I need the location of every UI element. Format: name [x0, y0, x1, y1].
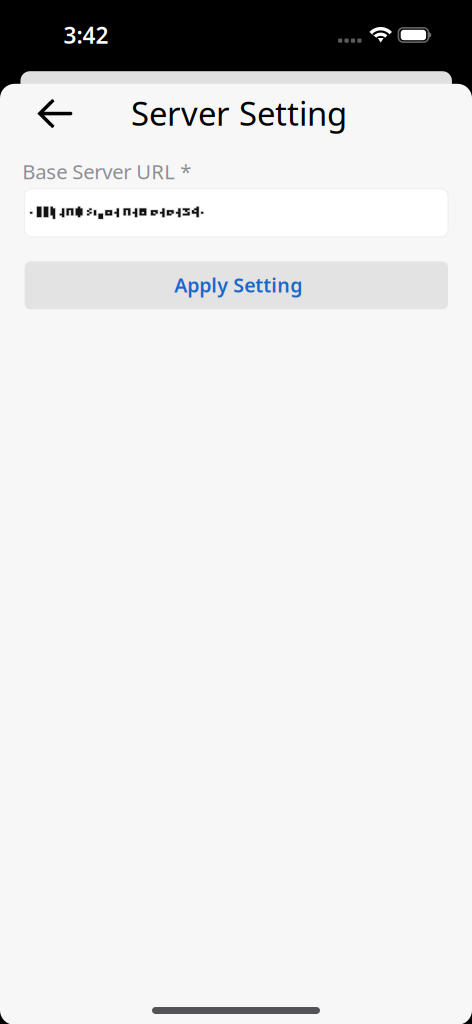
button[interactable]: Apply Setting	[25, 261, 448, 309]
staticText: Apply Setting	[174, 272, 302, 298]
staticText: Server Setting	[131, 91, 347, 135]
staticText: Base Server URL *	[22, 158, 191, 185]
staticText: 3:42	[63, 20, 108, 50]
button[interactable]: Back	[29, 88, 81, 140]
